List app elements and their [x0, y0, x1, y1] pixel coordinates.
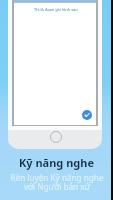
staticText: Thi là đoạn ghi hình sau — [34, 7, 78, 12]
staticText: Rèn luyện Kỹ năng nghe với Người bản xứ — [10, 172, 104, 193]
button[interactable]: Confirm — [82, 110, 92, 120]
staticText: Kỹ năng nghe — [19, 155, 94, 170]
